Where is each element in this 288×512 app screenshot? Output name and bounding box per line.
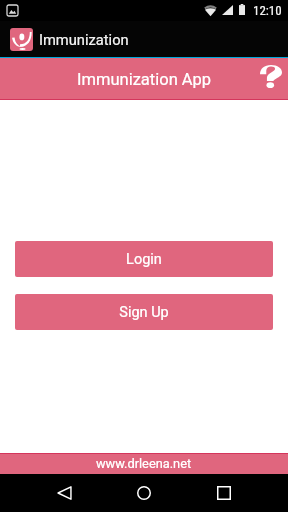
button[interactable]: Back — [42, 474, 86, 512]
button[interactable]: Login — [15, 241, 273, 277]
button[interactable]: Sign Up — [15, 294, 273, 330]
staticText: Sign Up — [119, 304, 169, 321]
staticText: 12:10 — [253, 3, 282, 18]
button[interactable]: Home — [122, 474, 166, 512]
staticText: Immunization App — [77, 70, 212, 89]
button[interactable]: www.drleena.net — [0, 453, 288, 474]
staticText: Login — [126, 251, 162, 268]
button[interactable]: Help — [246, 58, 288, 100]
staticText: Immunization — [39, 31, 129, 48]
button[interactable]: Recents — [202, 474, 246, 512]
staticText: www.drleena.net — [96, 456, 192, 471]
